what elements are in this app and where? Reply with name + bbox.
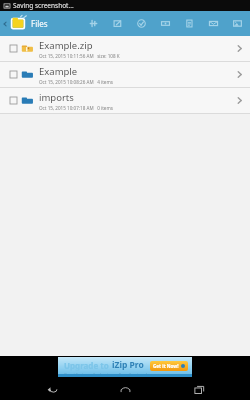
button[interactable]: Select Example.zip xyxy=(8,43,19,54)
staticText: Example xyxy=(39,65,78,78)
staticText: imports xyxy=(39,91,74,104)
staticText: Saving screenshot... xyxy=(13,1,74,10)
button[interactable]: Up xyxy=(0,11,10,36)
button[interactable]: Recents xyxy=(177,378,221,400)
staticText: iZip Pro xyxy=(112,359,144,371)
staticText: Example.zip xyxy=(39,39,93,52)
button[interactable]: Get it Now! xyxy=(150,361,188,371)
button[interactable]: Create document xyxy=(177,11,201,36)
button[interactable]: Select Example.zip xyxy=(0,36,250,61)
button[interactable]: Open imports xyxy=(228,88,250,113)
button[interactable]: Select imports xyxy=(0,88,250,113)
button[interactable]: Back xyxy=(30,378,74,400)
button[interactable]: Gallery xyxy=(225,11,249,36)
staticText: Oct 15, 2015 10:08:26 AM 4 items xyxy=(39,79,113,85)
staticText: Great features for business & profession… xyxy=(64,372,159,377)
staticText: Files xyxy=(31,18,48,29)
button[interactable]: Select imports xyxy=(8,95,19,106)
staticText: Oct 15, 2015 10:11:56 AM size: 108 K xyxy=(39,53,120,59)
staticText: Oct 15, 2015 10:07:18 AM 0 items xyxy=(39,105,113,111)
button[interactable]: Camera xyxy=(153,11,177,36)
button[interactable]: Open Example.zip xyxy=(228,36,250,61)
button[interactable]: Compress xyxy=(81,11,105,36)
button[interactable]: Home xyxy=(103,378,147,400)
button[interactable]: Extract xyxy=(105,11,129,36)
staticText: Get it Now! xyxy=(153,363,179,369)
button[interactable]: Files xyxy=(10,15,50,32)
button[interactable]: Email xyxy=(201,11,225,36)
button[interactable]: Select Example xyxy=(8,69,19,80)
staticText: Upgrade to xyxy=(64,360,109,371)
button[interactable]: Select all xyxy=(129,11,153,36)
button[interactable]: Select Example xyxy=(0,62,250,87)
button[interactable]: Ad: Upgrade to iZip Pro xyxy=(58,357,192,377)
button[interactable]: Open Example xyxy=(228,62,250,87)
